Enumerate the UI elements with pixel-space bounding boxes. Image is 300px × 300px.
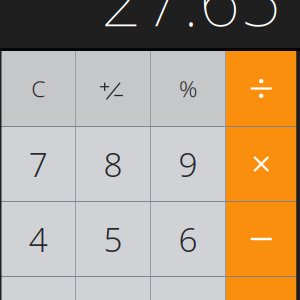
button[interactable]: 6 <box>151 202 225 276</box>
staticText: 7 <box>29 142 48 186</box>
staticText: 8 <box>103 142 122 186</box>
staticText: % <box>179 73 197 103</box>
button[interactable]: % <box>151 51 225 126</box>
button[interactable]: 5 <box>76 202 150 276</box>
button[interactable]: 9 <box>151 127 225 201</box>
button[interactable]: Subtract <box>226 202 296 276</box>
button[interactable]: Multiply <box>226 127 296 201</box>
staticText: 27.65 <box>101 0 281 46</box>
button[interactable]: 8 <box>76 127 150 201</box>
staticText: 4 <box>29 217 48 261</box>
staticText: C <box>31 73 45 103</box>
staticText: 5 <box>103 217 122 261</box>
staticText: 9 <box>178 142 197 186</box>
button[interactable]: C <box>1 51 75 126</box>
button[interactable]: 4 <box>1 202 75 276</box>
button[interactable]: 7 <box>1 127 75 201</box>
button[interactable]: Plus minus <box>76 51 150 126</box>
staticText: 6 <box>178 217 197 261</box>
button[interactable]: Divide <box>226 51 296 126</box>
